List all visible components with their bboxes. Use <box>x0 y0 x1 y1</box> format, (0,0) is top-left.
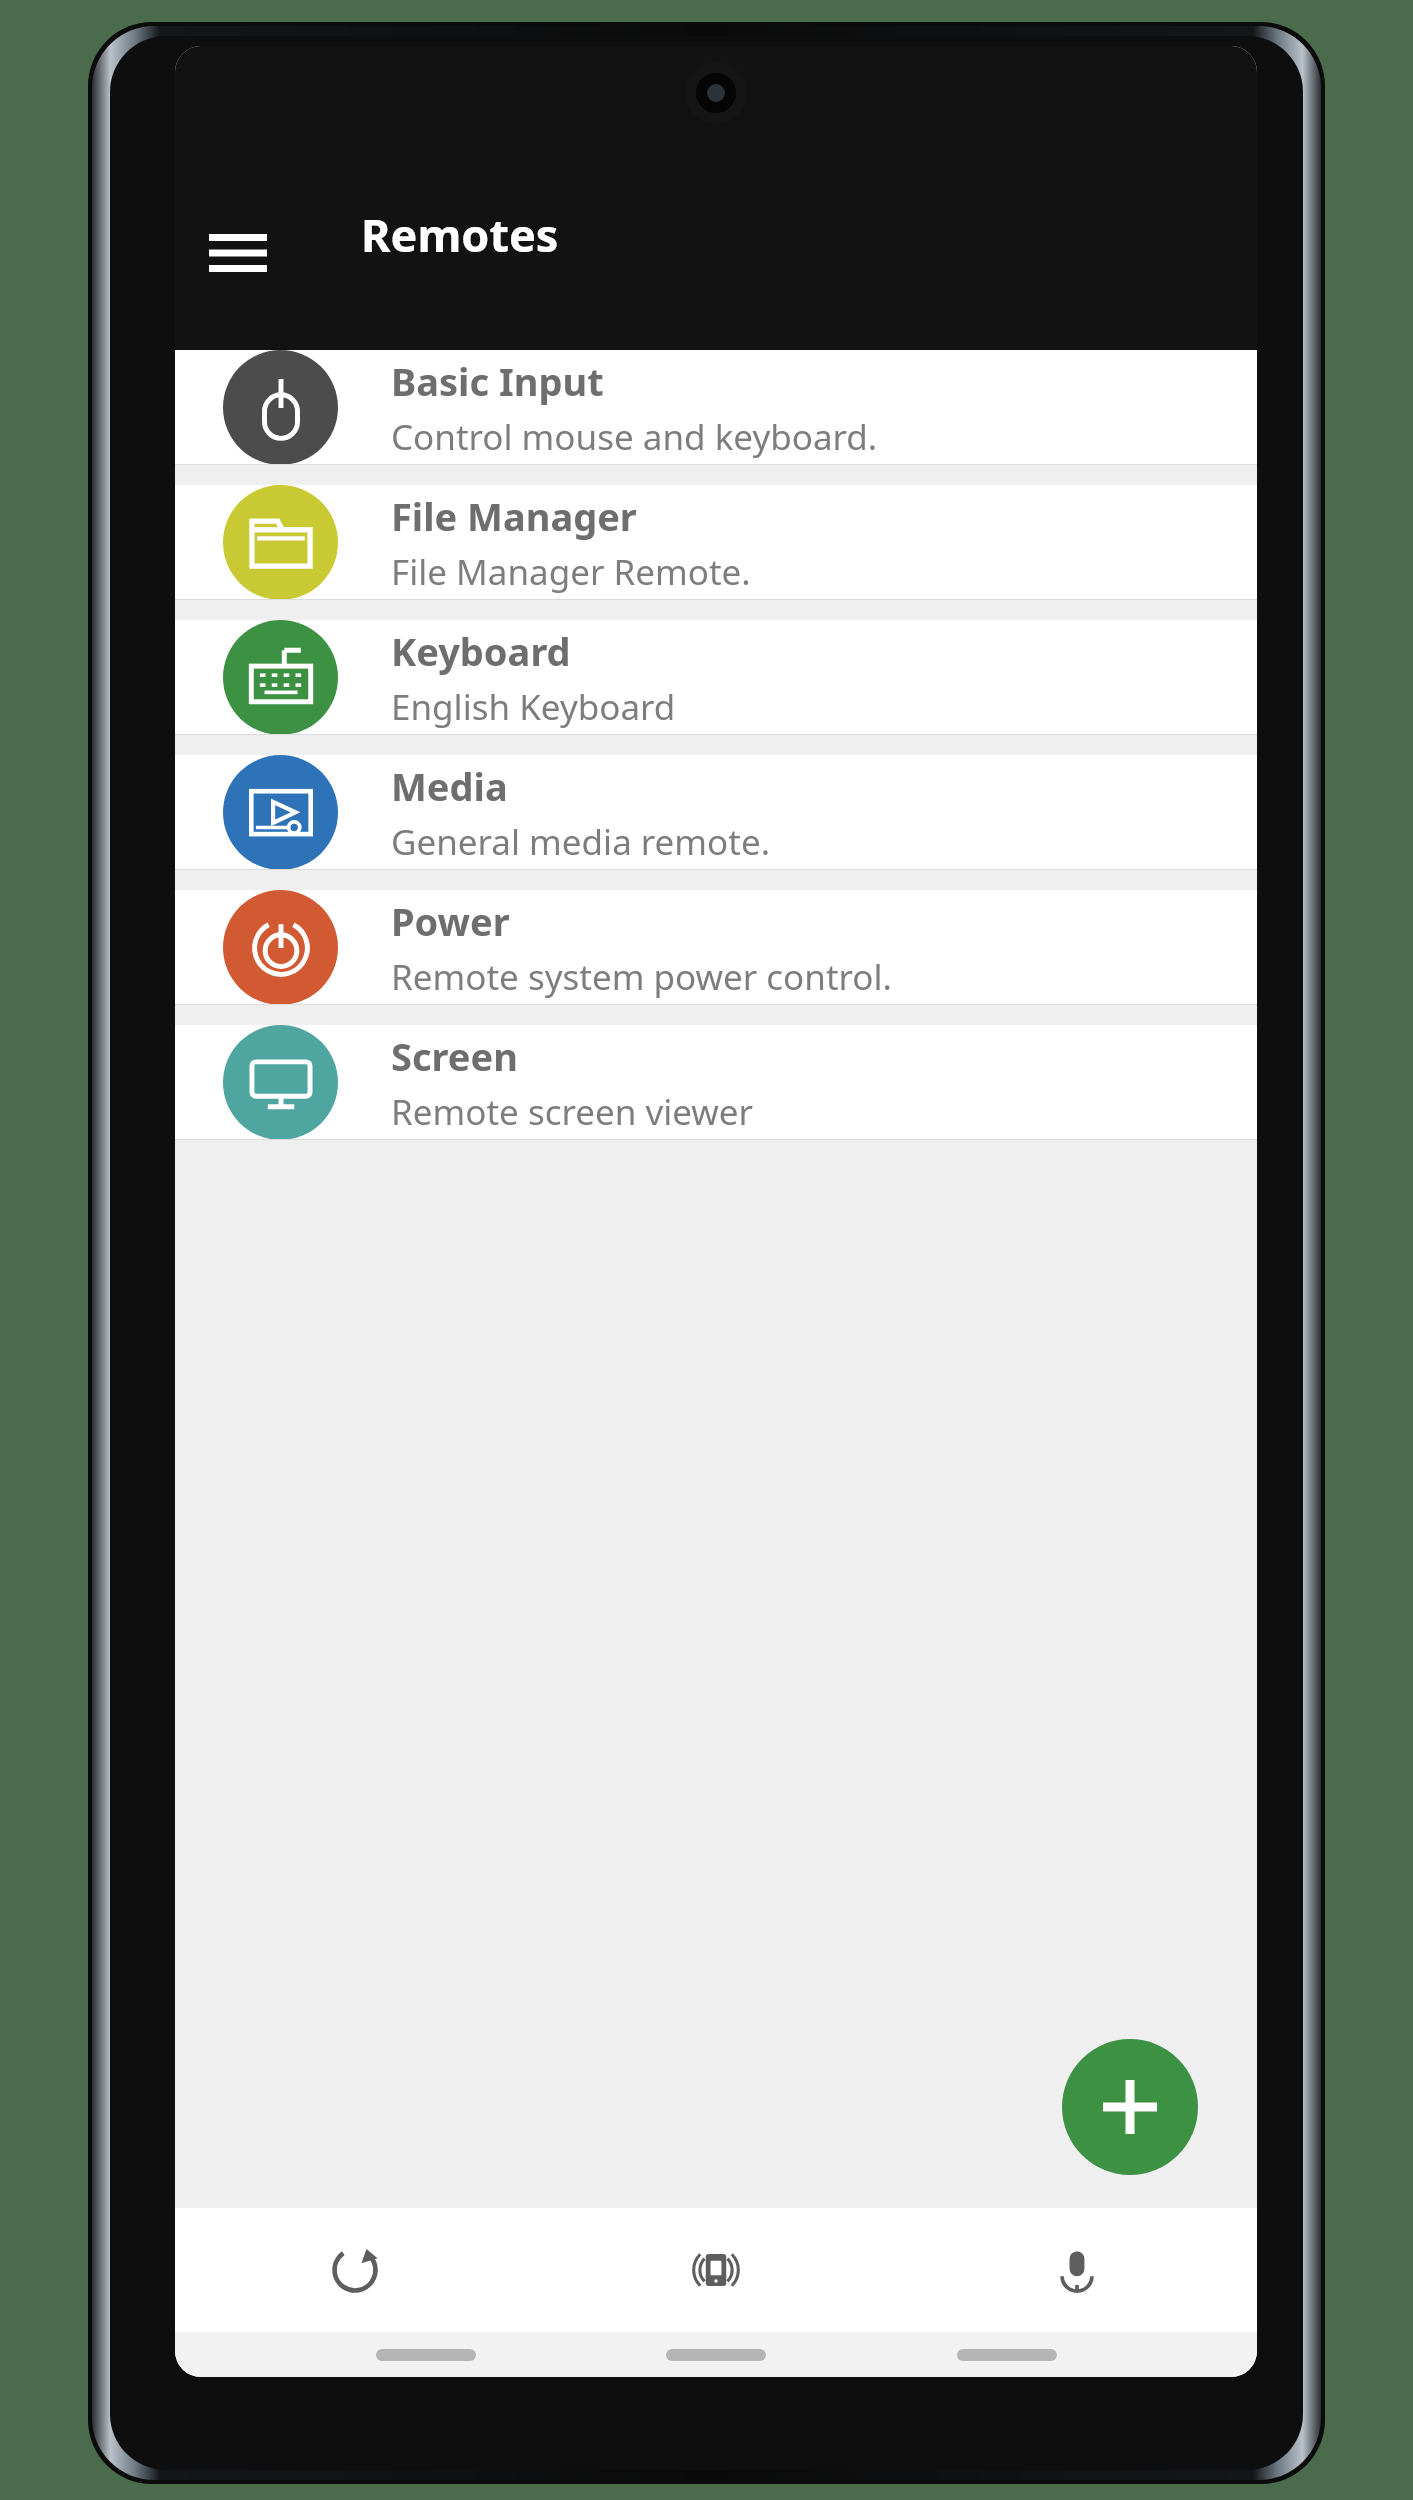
staticText: Remotes <box>361 204 559 265</box>
button[interactable]: Keyboard <box>175 620 1257 735</box>
staticText: English Keyboard <box>391 683 676 731</box>
staticText: File Manager Remote. <box>391 548 751 596</box>
staticText: Remote system power control. <box>391 953 892 1001</box>
staticText: Basic Input <box>391 355 604 407</box>
button[interactable]: Media <box>175 755 1257 870</box>
button[interactable]: Voice input <box>896 2208 1257 2332</box>
button[interactable]: Basic Input <box>175 350 1257 465</box>
button[interactable]: Open navigation menu <box>193 208 283 298</box>
button[interactable]: Refresh <box>175 2208 535 2332</box>
button[interactable]: File Manager <box>175 485 1257 600</box>
staticText: Keyboard <box>391 625 571 677</box>
staticText: Control mouse and keyboard. <box>391 413 878 461</box>
staticText: Screen <box>391 1030 518 1082</box>
staticText: Remote screen viewer <box>391 1088 753 1136</box>
staticText: General media remote. <box>391 818 771 866</box>
staticText: File Manager <box>391 490 637 542</box>
button[interactable]: Power <box>175 890 1257 1005</box>
button[interactable]: Add remote <box>1062 2039 1198 2175</box>
staticText: Media <box>391 760 508 812</box>
button[interactable]: Screen <box>175 1025 1257 1140</box>
staticText: Power <box>391 895 510 947</box>
button[interactable]: Vibrate device <box>535 2208 896 2332</box>
